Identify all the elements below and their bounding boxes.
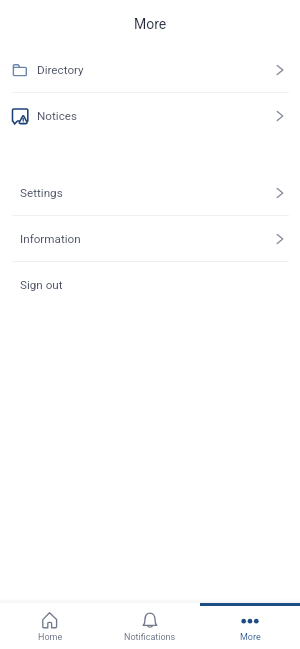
staticText: More xyxy=(134,16,167,32)
button[interactable]: More xyxy=(200,603,300,649)
button[interactable]: Notices xyxy=(0,93,300,138)
staticText: Notifications xyxy=(124,632,176,643)
button[interactable]: Home xyxy=(0,603,100,649)
button[interactable]: Information xyxy=(0,216,300,261)
button[interactable]: Directory xyxy=(0,47,300,92)
button[interactable]: Settings xyxy=(0,170,300,215)
staticText: Information xyxy=(20,232,81,246)
staticText: Settings xyxy=(20,186,63,200)
button[interactable]: Notifications xyxy=(100,603,200,649)
button[interactable]: Sign out xyxy=(0,262,300,307)
staticText: Directory xyxy=(37,63,84,77)
staticText: Home xyxy=(38,632,63,643)
staticText: More xyxy=(240,632,261,643)
staticText: Notices xyxy=(37,109,78,123)
staticText: Sign out xyxy=(20,278,63,292)
